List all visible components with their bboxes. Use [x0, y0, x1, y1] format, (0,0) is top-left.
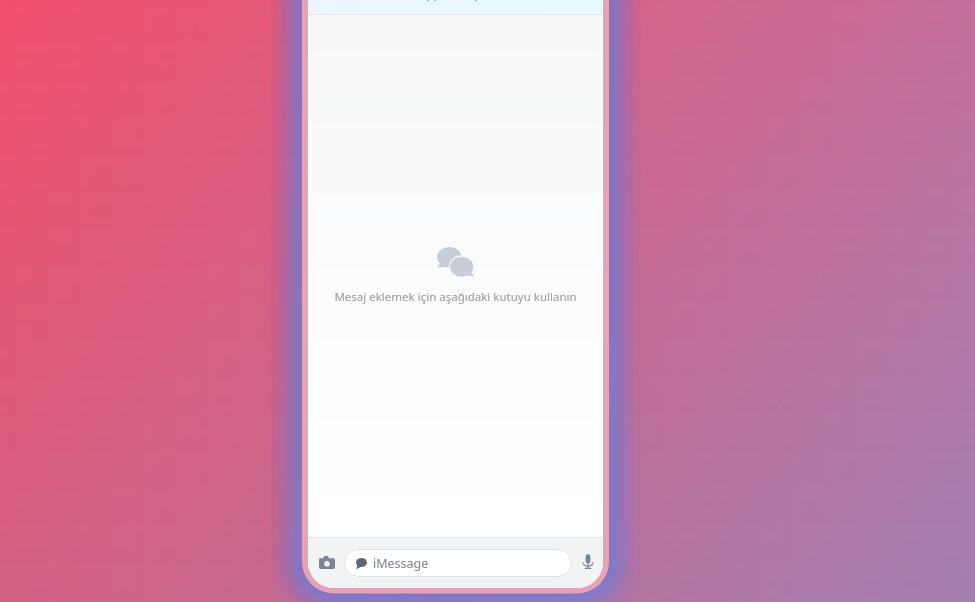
staticText: Mesaj yaz ve gönder — [396, 0, 512, 1]
button[interactable]: Take photo — [313, 549, 340, 576]
button[interactable]: Dictate — [575, 549, 601, 575]
staticText: Mesaj eklemek için aşağıdaki kutuyu kull… — [334, 289, 577, 305]
button[interactable]: iMessage — [344, 549, 572, 577]
staticText: iMessage — [373, 555, 429, 572]
